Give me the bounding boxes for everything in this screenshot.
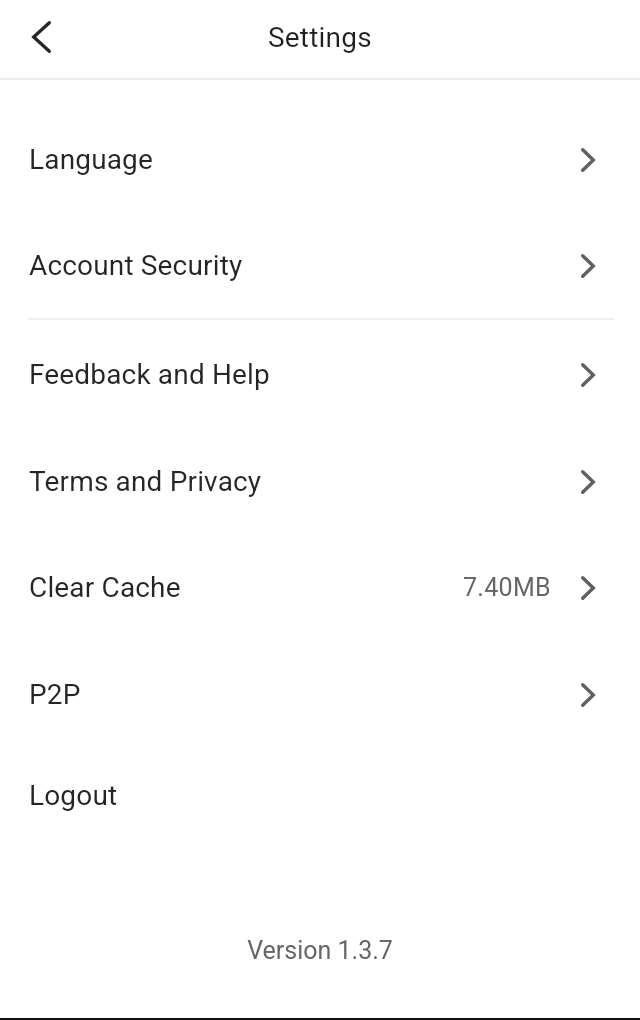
button[interactable]: Account Security <box>0 212 640 319</box>
staticText: P2P <box>29 678 81 711</box>
staticText: Settings <box>268 21 372 54</box>
staticText: Terms and Privacy <box>29 465 262 498</box>
button[interactable]: Terms and Privacy <box>0 428 640 535</box>
button[interactable]: Clear Cache <box>0 534 640 641</box>
button[interactable]: Back <box>0 0 82 78</box>
button[interactable]: Language <box>0 106 640 213</box>
staticText: Clear Cache <box>29 571 181 604</box>
button[interactable]: Feedback and Help <box>0 321 640 428</box>
staticText: Language <box>29 143 154 176</box>
button[interactable]: Logout <box>0 742 640 849</box>
staticText: 7.40MB <box>463 573 551 602</box>
staticText: Logout <box>29 779 118 812</box>
button[interactable]: P2P <box>0 641 640 748</box>
staticText: Version 1.3.7 <box>0 936 640 965</box>
staticText: Account Security <box>29 249 243 282</box>
staticText: Feedback and Help <box>29 358 270 391</box>
